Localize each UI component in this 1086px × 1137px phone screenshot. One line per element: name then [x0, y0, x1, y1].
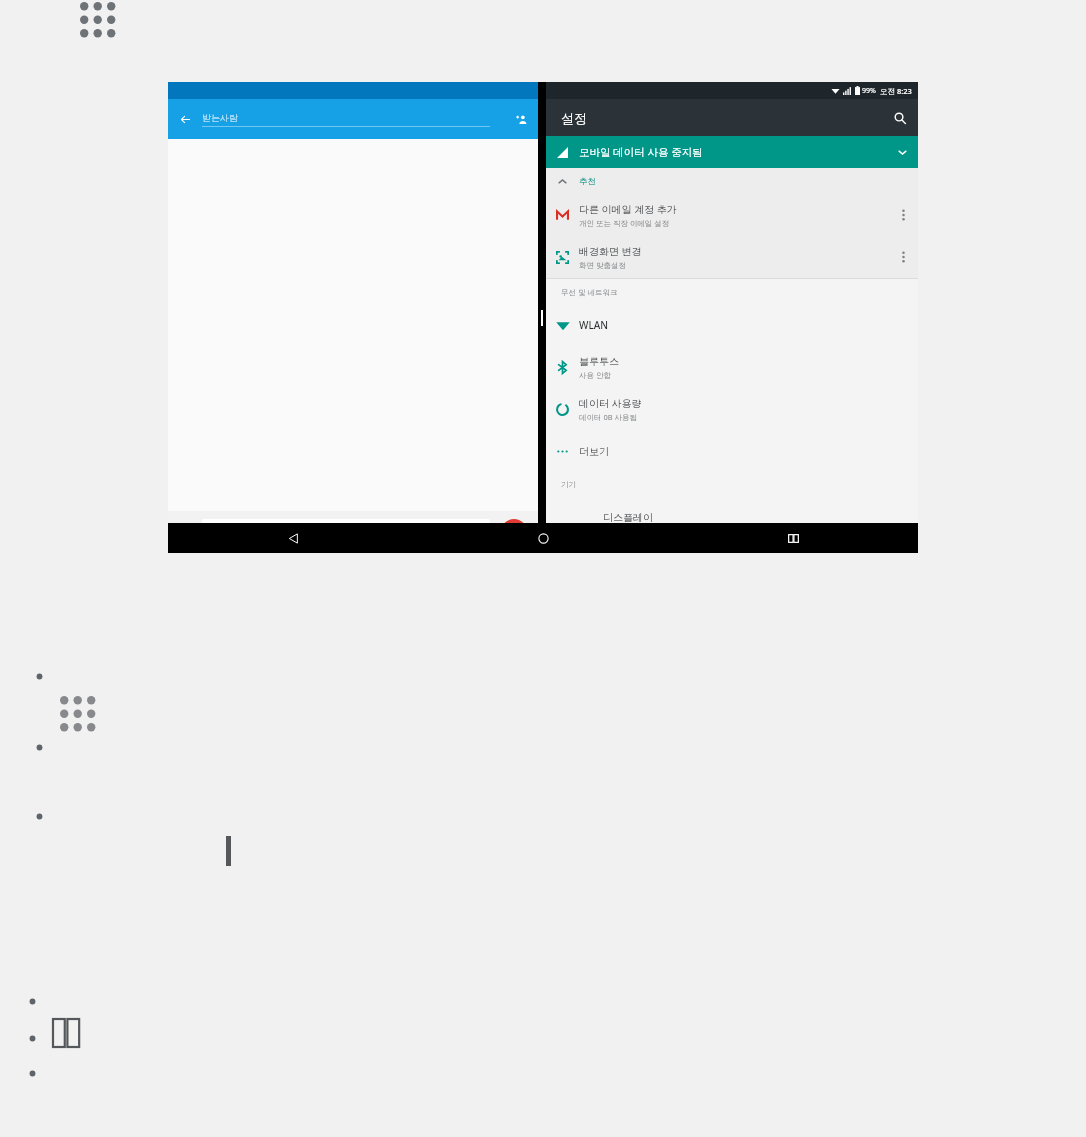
button[interactable]: 메시지 입력	[202, 519, 490, 546]
staticText: 오전 8:23	[880, 86, 912, 96]
button[interactable]: Send to contact	[501, 519, 527, 545]
button[interactable]: Recents	[668, 523, 918, 553]
staticText: 배경화면 변경	[579, 244, 642, 258]
staticText: 설정	[561, 110, 587, 126]
staticText: 데이터 사용량	[579, 396, 642, 410]
button[interactable]: 블루투스	[546, 346, 918, 388]
staticText: 다른 이메일 계정 추가	[579, 202, 677, 216]
button[interactable]: 디스플레이	[603, 511, 918, 524]
button[interactable]: 배경화면 변경	[546, 236, 918, 278]
button[interactable]: 추천	[546, 168, 918, 194]
staticText: 추천	[579, 176, 596, 187]
staticText: 받는사람	[202, 112, 238, 123]
button[interactable]: Home	[418, 523, 668, 553]
button[interactable]: Add contact	[504, 102, 538, 136]
staticText: 모바일 데이터 사용 중지됨	[579, 145, 703, 159]
button[interactable]: More options	[888, 236, 918, 278]
button[interactable]: 다른 이메일 계정 추가	[546, 194, 918, 236]
staticText: 더보기	[579, 445, 609, 458]
button[interactable]: More options	[888, 194, 918, 236]
staticText: WLAN	[579, 318, 609, 332]
staticText: 데이터 0B 사용됨	[579, 412, 638, 422]
button[interactable]: WLAN	[546, 304, 918, 346]
staticText: 99%	[862, 86, 876, 96]
button[interactable]: 더보기	[546, 430, 918, 472]
staticText: 기기	[561, 480, 576, 489]
staticText: 무선 및 네트워크	[561, 287, 618, 297]
staticText: 화면 맞춤설정	[579, 260, 626, 270]
button[interactable]: 모바일 데이터 사용 중지됨	[546, 136, 918, 168]
button[interactable]: Back	[168, 523, 418, 553]
button[interactable]: Attach	[168, 515, 202, 549]
button[interactable]: Search	[882, 100, 918, 136]
staticText: 개인 또는 직장 이메일 설정	[579, 218, 670, 228]
staticText: 사용 안함	[579, 370, 611, 380]
button[interactable]: 데이터 사용량	[546, 388, 918, 430]
staticText: 디스플레이	[603, 511, 653, 524]
staticText: 블루투스	[579, 355, 619, 368]
button[interactable]: Back	[168, 102, 202, 136]
